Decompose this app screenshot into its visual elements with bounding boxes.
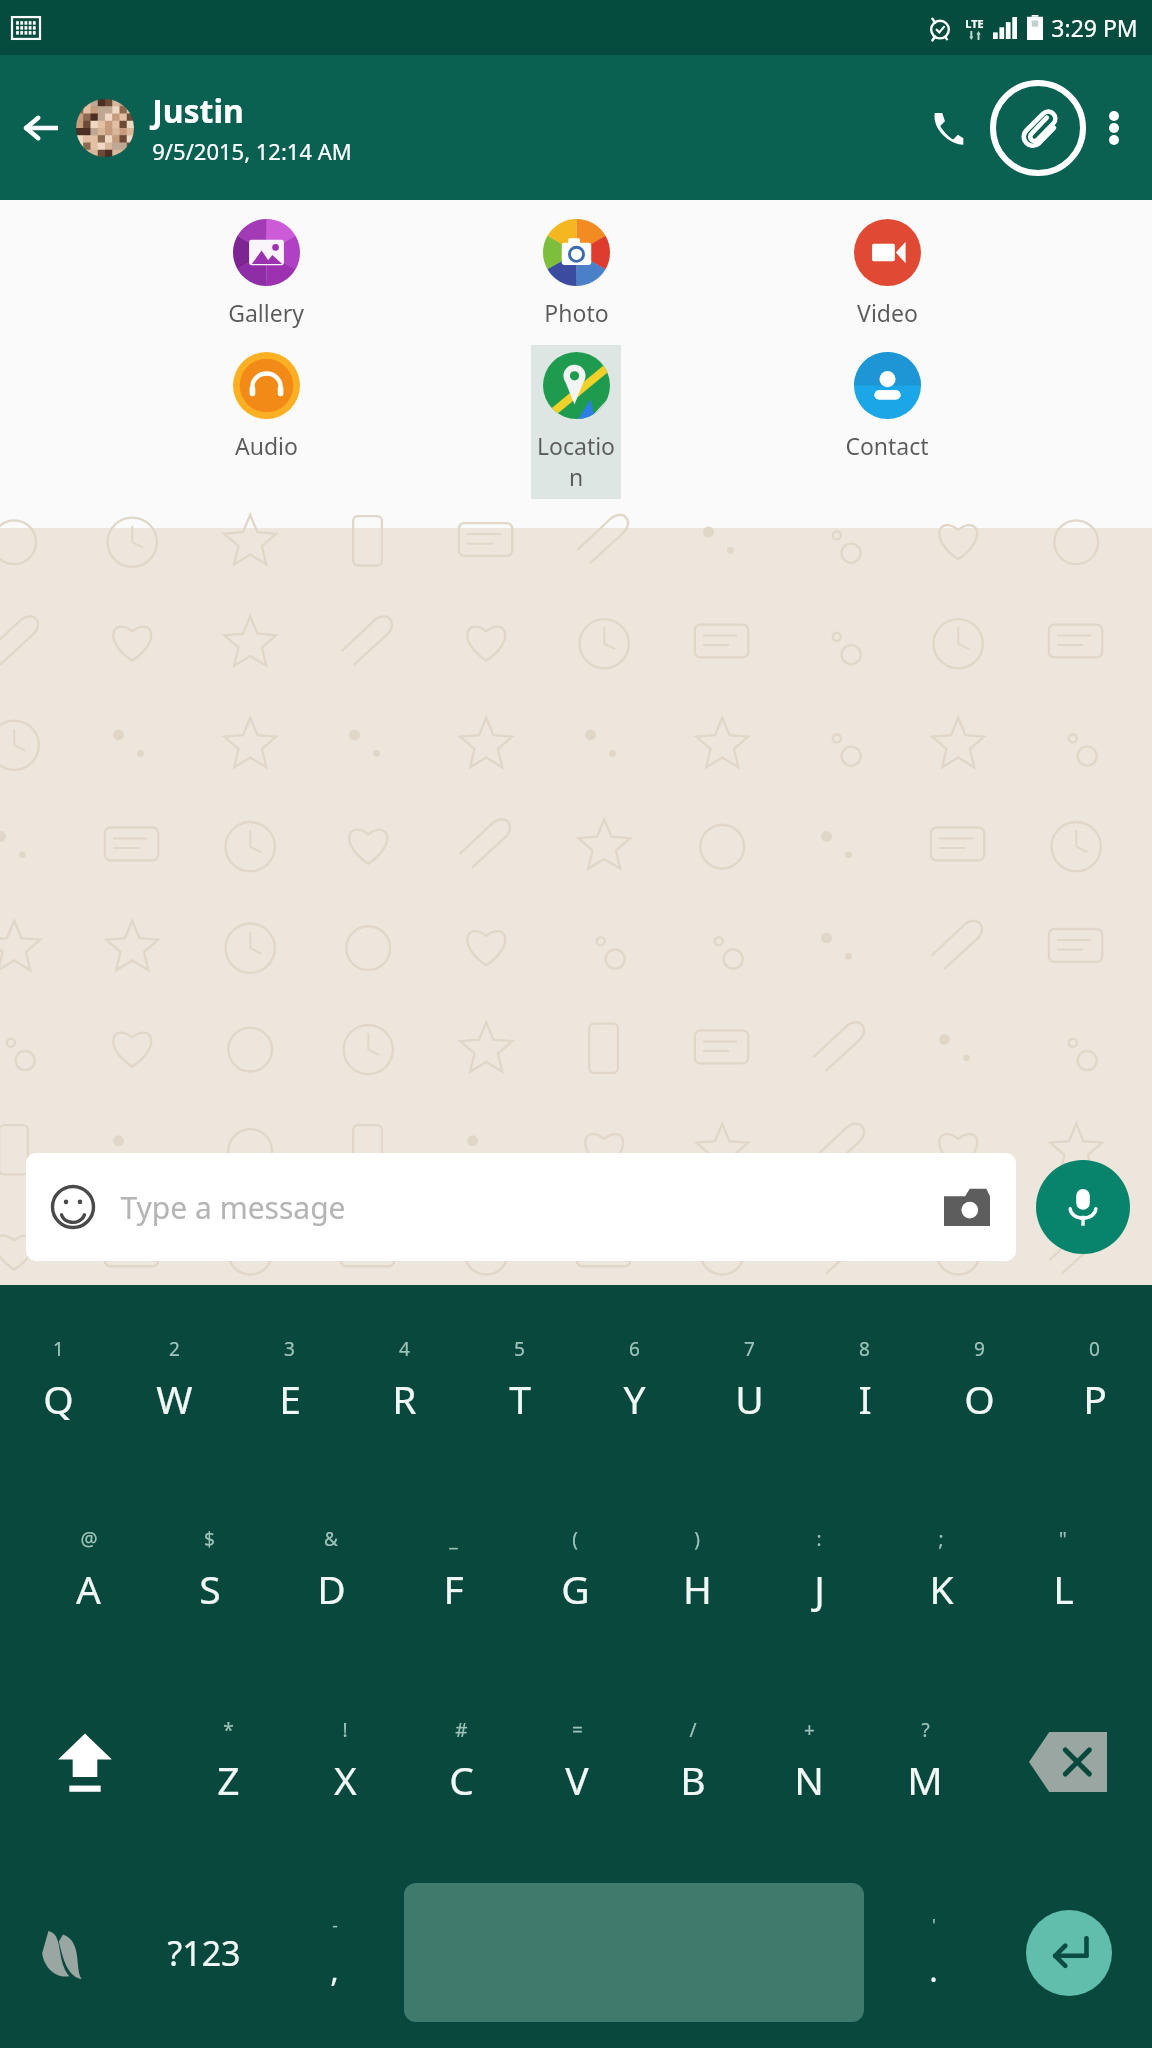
- staticText: B: [680, 1753, 706, 1806]
- button[interactable]: ?123: [126, 1857, 282, 2048]
- staticText: (: [572, 1526, 578, 1552]
- button[interactable]: Photo: [531, 212, 621, 335]
- staticText: D: [317, 1562, 346, 1615]
- staticText: W: [156, 1372, 193, 1425]
- button[interactable]: Video: [842, 212, 932, 335]
- button[interactable]: &: [270, 1475, 392, 1666]
- button[interactable]: Voice message: [1036, 1160, 1130, 1254]
- staticText: .: [929, 1948, 938, 1992]
- button[interactable]: 6: [577, 1285, 692, 1475]
- button[interactable]: $: [149, 1475, 270, 1666]
- staticText: Type a message: [120, 1187, 346, 1228]
- staticText: V: [565, 1753, 589, 1806]
- staticText: J: [814, 1562, 825, 1615]
- button[interactable]: Gallery: [221, 212, 311, 335]
- staticText: =: [572, 1717, 583, 1743]
- button[interactable]: :: [758, 1475, 880, 1666]
- button[interactable]: ": [1002, 1475, 1124, 1666]
- button[interactable]: @: [28, 1475, 149, 1666]
- button[interactable]: Shift: [0, 1666, 170, 1857]
- staticText: 4: [399, 1336, 410, 1362]
- staticText: Justin: [152, 89, 244, 133]
- button[interactable]: 3: [232, 1285, 347, 1475]
- staticText: Video: [857, 297, 918, 328]
- button[interactable]: _: [392, 1475, 514, 1666]
- button[interactable]: Backspace: [983, 1666, 1152, 1857]
- staticText: 6: [629, 1336, 640, 1362]
- staticText: $: [204, 1526, 215, 1552]
- button[interactable]: !: [287, 1666, 403, 1857]
- button[interactable]: +: [751, 1666, 867, 1857]
- staticText: LTE: [965, 16, 984, 31]
- button[interactable]: Back: [10, 97, 72, 159]
- staticText: ;: [938, 1526, 944, 1552]
- staticText: C: [449, 1753, 474, 1806]
- button[interactable]: 1: [0, 1285, 116, 1475]
- staticText: Q: [43, 1372, 74, 1425]
- button[interactable]: Space: [386, 1883, 881, 2022]
- button[interactable]: Contact: [842, 345, 932, 468]
- staticText: H: [683, 1562, 712, 1615]
- button[interactable]: Enter: [985, 1857, 1152, 2048]
- staticText: Location: [531, 430, 621, 492]
- button[interactable]: Location: [531, 345, 621, 499]
- staticText: 8: [859, 1336, 870, 1362]
- button[interactable]: 2: [116, 1285, 232, 1475]
- button[interactable]: 7: [692, 1285, 807, 1475]
- button[interactable]: 9: [922, 1285, 1037, 1475]
- staticText: ,: [330, 1948, 339, 1992]
- staticText: A: [76, 1562, 101, 1615]
- staticText: L: [1053, 1562, 1074, 1615]
- staticText: 0: [1089, 1336, 1100, 1362]
- button[interactable]: Handwriting: [0, 1857, 126, 2048]
- button[interactable]: ': [881, 1857, 985, 2048]
- staticText: ": [1059, 1526, 1067, 1552]
- staticText: 2: [169, 1336, 180, 1362]
- button[interactable]: #: [403, 1666, 519, 1857]
- staticText: &: [324, 1526, 338, 1552]
- staticText: Audio: [235, 430, 298, 461]
- button[interactable]: =: [519, 1666, 635, 1857]
- staticText: Y: [623, 1372, 646, 1425]
- button[interactable]: *: [170, 1666, 287, 1857]
- button[interactable]: Emoji: [26, 1153, 1016, 1261]
- staticText: S: [199, 1562, 221, 1615]
- button[interactable]: ?: [867, 1666, 983, 1857]
- staticText: *: [223, 1717, 234, 1743]
- staticText: Photo: [544, 297, 609, 328]
- staticText: _: [449, 1526, 458, 1552]
- button[interactable]: ;: [880, 1475, 1002, 1666]
- staticText: 3:29 PM: [1051, 12, 1138, 43]
- staticText: @: [80, 1526, 98, 1552]
- staticText: T: [509, 1372, 531, 1425]
- button[interactable]: /: [635, 1666, 751, 1857]
- staticText: I: [858, 1372, 872, 1425]
- button[interactable]: 5: [462, 1285, 577, 1475]
- button[interactable]: Emoji: [48, 1182, 98, 1232]
- button[interactable]: (: [514, 1475, 636, 1666]
- staticText: X: [334, 1753, 357, 1806]
- staticText: M: [907, 1753, 943, 1806]
- button[interactable]: 8: [807, 1285, 922, 1475]
- staticText: /: [689, 1717, 697, 1743]
- staticText: P: [1083, 1372, 1107, 1425]
- button[interactable]: Audio: [221, 345, 311, 468]
- button[interactable]: Call: [914, 95, 980, 161]
- button[interactable]: 0: [1037, 1285, 1152, 1475]
- staticText: !: [342, 1717, 348, 1743]
- button[interactable]: Attach: [990, 80, 1086, 176]
- button[interactable]: -: [282, 1857, 386, 2048]
- button[interactable]: More options: [1086, 100, 1142, 156]
- staticText: 1: [53, 1336, 64, 1362]
- staticText: 9/5/2015, 12:14 AM: [152, 136, 352, 166]
- staticText: 5: [514, 1336, 525, 1362]
- staticText: K: [929, 1562, 954, 1615]
- staticText: U: [735, 1372, 764, 1425]
- staticText: R: [392, 1372, 417, 1425]
- staticText: ?: [921, 1717, 930, 1743]
- button[interactable]: Camera: [940, 1180, 994, 1234]
- staticText: 9: [974, 1336, 985, 1362]
- button[interactable]: 4: [347, 1285, 462, 1475]
- button[interactable]: ): [636, 1475, 758, 1666]
- staticText: :: [816, 1526, 822, 1552]
